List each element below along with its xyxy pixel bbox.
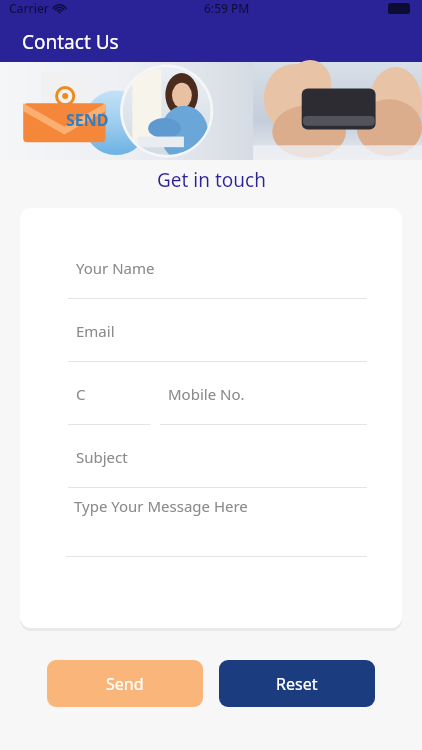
staticText: Mobile No. [168,384,245,404]
staticText: Email [76,321,115,341]
staticText: Your Name [76,258,155,278]
button[interactable]: Send [47,660,203,707]
button[interactable]: Type Your Message Here [20,496,402,557]
staticText: C [76,384,86,404]
staticText: Send [106,673,144,695]
staticText: Type Your Message Here [74,496,248,516]
staticText: Subject [76,447,128,467]
staticText: 6:59 PM [204,0,250,16]
button[interactable]: C [20,384,160,425]
staticText: Get in touch [157,167,266,193]
button[interactable]: Reset [219,660,375,707]
button[interactable]: Subject [20,447,402,488]
staticText: Carrier [9,0,49,16]
staticText: SEND [66,109,109,131]
button[interactable]: Your Name [20,258,402,299]
button[interactable]: Mobile No. [160,384,402,425]
staticText: Reset [276,673,318,695]
button[interactable]: Email [20,321,402,362]
staticText: Contact Us [22,29,119,55]
